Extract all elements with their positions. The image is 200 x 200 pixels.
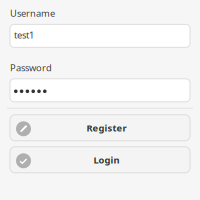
staticText: Username [10, 7, 55, 19]
staticText: Login [93, 154, 119, 166]
staticText: Password [10, 61, 52, 74]
button[interactable]: Register [10, 115, 190, 141]
staticText: Register [86, 122, 126, 134]
staticText: test1 [14, 29, 34, 41]
button[interactable]: Login [10, 147, 190, 173]
